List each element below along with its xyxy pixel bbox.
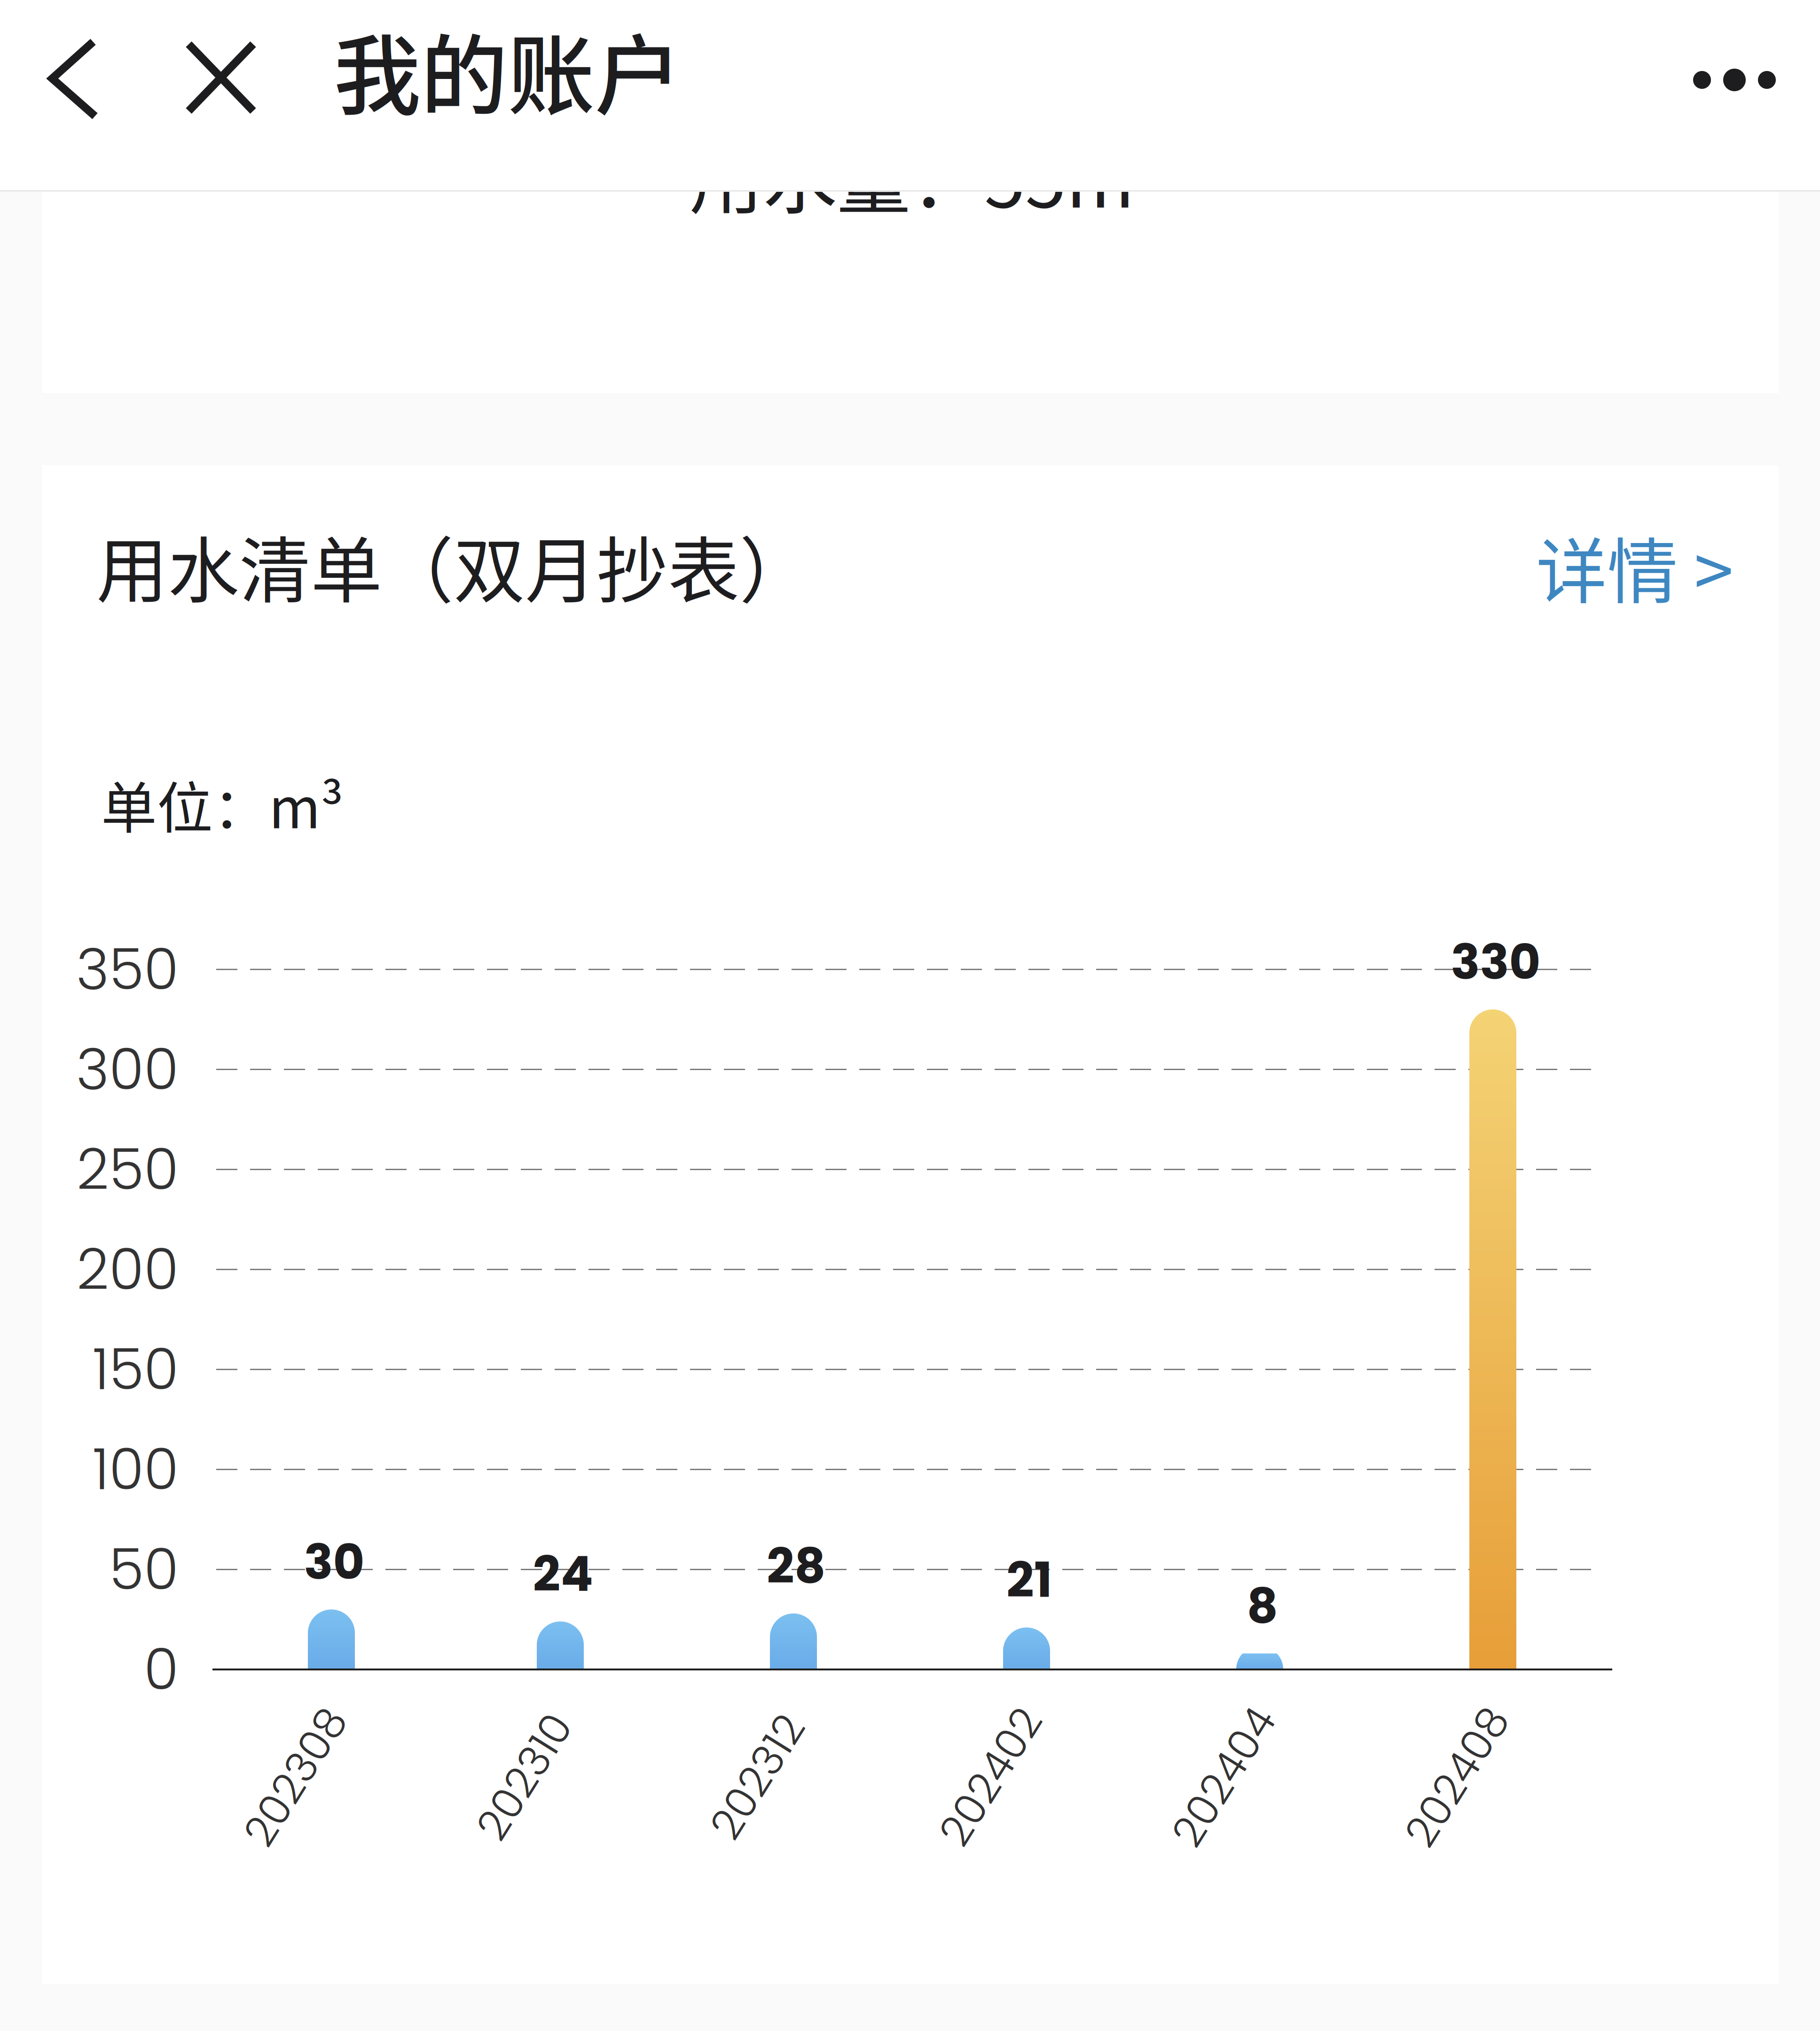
staticText: 202310 bbox=[455, 1747, 594, 1806]
staticText: 202308 bbox=[219, 1747, 372, 1806]
staticText: 202408 bbox=[1380, 1747, 1534, 1806]
staticText: 250 bbox=[77, 1130, 179, 1209]
staticText: 我的账户 bbox=[334, 6, 682, 133]
staticText: 21 bbox=[1006, 1546, 1052, 1614]
staticText: 30 bbox=[304, 1528, 365, 1596]
staticText: 详情 > bbox=[1536, 515, 1734, 618]
button[interactable]: Close bbox=[162, 7, 280, 148]
staticText: 100 bbox=[93, 1430, 179, 1509]
staticText: 202312 bbox=[689, 1747, 826, 1806]
staticText: 28 bbox=[767, 1532, 826, 1600]
staticText: 50 bbox=[109, 1530, 179, 1609]
button[interactable]: 详情 > bbox=[1489, 517, 1734, 616]
staticText: 8 bbox=[1247, 1572, 1278, 1640]
staticText: 200 bbox=[77, 1230, 179, 1309]
staticText: 24 bbox=[533, 1540, 593, 1608]
staticText: 350 bbox=[76, 930, 179, 1009]
staticText: 用水清单（双月抄表） bbox=[96, 514, 811, 617]
staticText: 300 bbox=[76, 1030, 179, 1109]
staticText: 单位：m³ bbox=[101, 764, 344, 844]
staticText: 202404 bbox=[1147, 1747, 1301, 1806]
staticText: 150 bbox=[93, 1330, 179, 1409]
staticText: 用水量：55m³ bbox=[689, 122, 1165, 229]
staticText: 202402 bbox=[915, 1747, 1067, 1806]
staticText: 330 bbox=[1451, 928, 1541, 996]
staticText: 0 bbox=[144, 1630, 179, 1709]
button[interactable]: More options bbox=[1664, 19, 1805, 141]
button[interactable]: Back bbox=[19, 8, 127, 150]
